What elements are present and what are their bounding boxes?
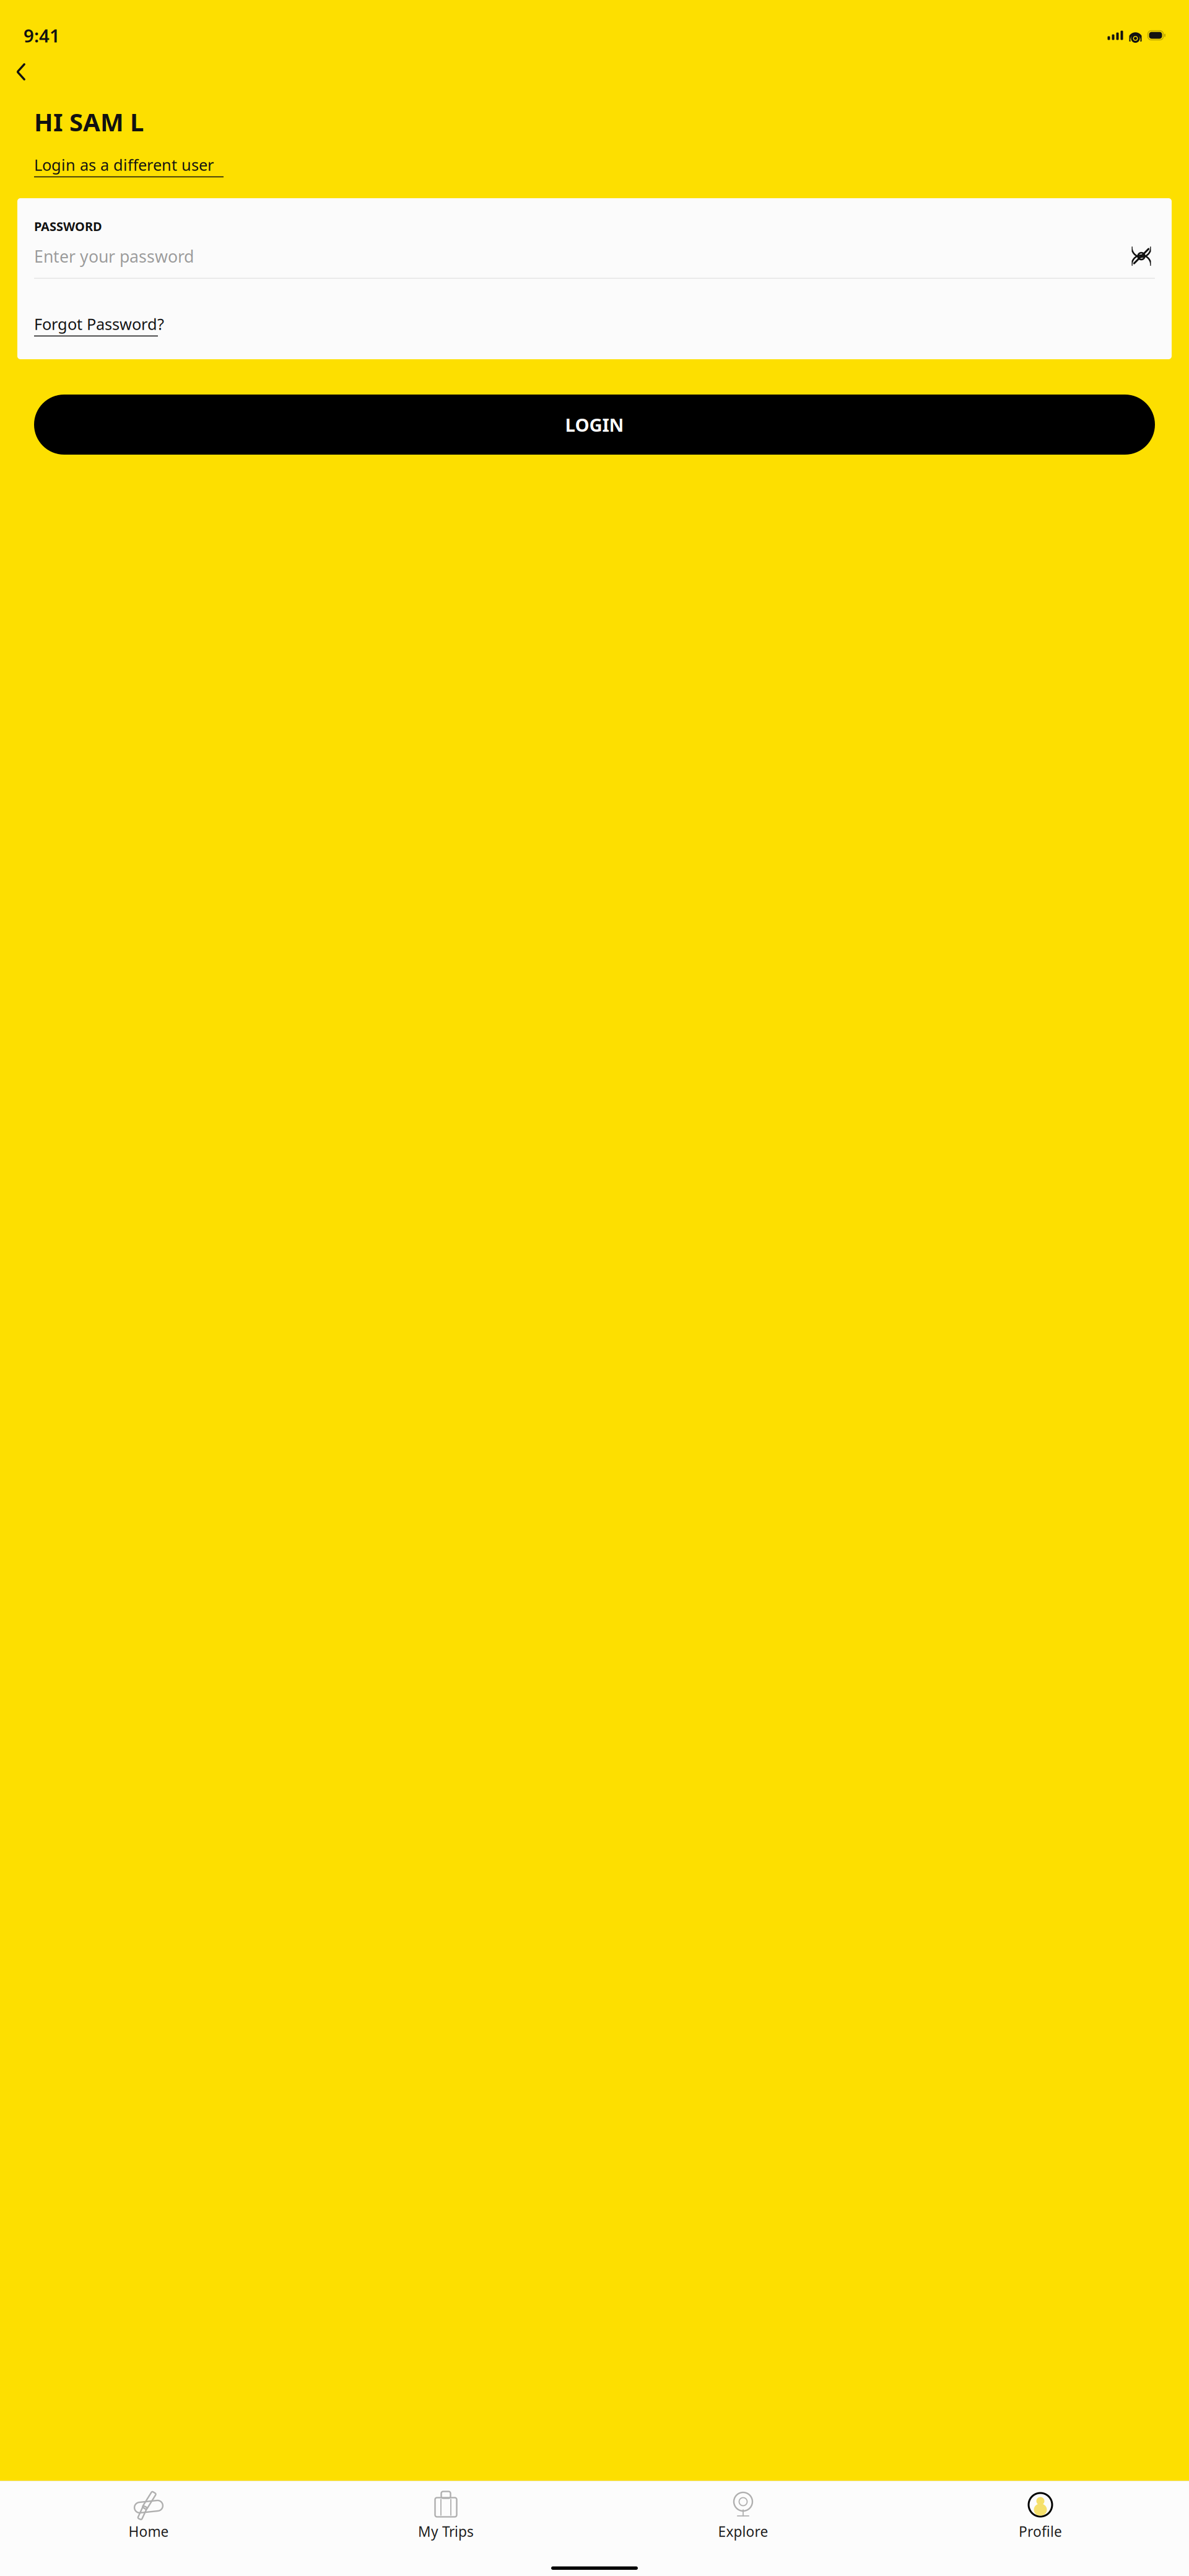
staticText: 9:41 <box>24 23 60 47</box>
button[interactable]: Explore <box>594 2490 892 2543</box>
staticText: Profile <box>1019 2522 1062 2541</box>
button[interactable]: Forgot Password? <box>34 279 164 336</box>
button[interactable]: Back <box>5 56 37 88</box>
staticText: Enter your password <box>34 245 194 267</box>
staticText: Forgot Password? <box>34 313 164 334</box>
staticText: Login as a different user <box>34 154 214 175</box>
staticText: HI SAM L <box>34 105 144 138</box>
staticText: LOGIN <box>565 413 624 437</box>
button[interactable]: Login as a different user <box>34 138 224 180</box>
staticText: Home <box>128 2522 169 2541</box>
button[interactable]: Show password <box>1128 244 1155 268</box>
button[interactable]: Home <box>0 2490 297 2543</box>
staticText: My Trips <box>418 2522 474 2541</box>
button[interactable]: Profile <box>892 2490 1189 2543</box>
staticText: Explore <box>718 2522 768 2541</box>
button[interactable]: LOGIN <box>34 395 1155 455</box>
staticText: PASSWORD <box>34 218 102 234</box>
button[interactable]: My Trips <box>297 2490 594 2543</box>
